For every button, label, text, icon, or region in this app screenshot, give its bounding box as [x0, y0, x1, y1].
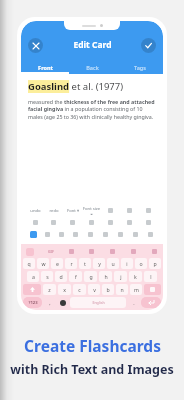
button[interactable]: ,	[44, 297, 55, 308]
button[interactable]: Format h	[98, 230, 113, 239]
button[interactable]: Keyboard tool 1	[68, 248, 75, 255]
button[interactable]: e	[51, 258, 63, 269]
button[interactable]: Backspace	[144, 284, 161, 295]
staticText: Goaslind et al. (1977)	[28, 80, 124, 93]
button[interactable]: k	[129, 271, 142, 282]
button[interactable]: o	[135, 258, 147, 269]
button[interactable]: Format S	[139, 206, 158, 215]
button[interactable]: Save	[141, 38, 156, 53]
button[interactable]: Format Font ▾	[63, 206, 82, 215]
staticText: Tags	[134, 64, 146, 71]
button[interactable]: d	[55, 271, 67, 282]
button[interactable]: j	[114, 271, 127, 282]
staticText: Edit Card	[73, 39, 112, 51]
button[interactable]: Format h	[40, 230, 54, 239]
button[interactable]: t	[79, 258, 91, 269]
button[interactable]: v	[88, 284, 100, 295]
button[interactable]: Format h	[54, 230, 68, 239]
button[interactable]: Format i	[44, 218, 63, 227]
staticText: q	[27, 260, 31, 267]
button[interactable]: Keyboard tool 2	[88, 248, 95, 255]
button[interactable]: a	[27, 271, 39, 282]
staticText: k	[134, 273, 137, 280]
button[interactable]: Front	[21, 60, 69, 74]
button[interactable]: c	[73, 284, 86, 295]
button[interactable]: Format i	[101, 218, 120, 227]
button[interactable]: f	[69, 271, 82, 282]
button[interactable]: Enter	[141, 297, 161, 308]
button[interactable]: g	[84, 271, 97, 282]
staticText: Create Flashcards	[24, 335, 161, 356]
button[interactable]: Format undo	[26, 206, 44, 215]
staticText: ?123	[28, 300, 38, 306]
staticText: t	[84, 260, 86, 267]
staticText: z	[48, 286, 51, 293]
button[interactable]: Back	[69, 60, 116, 74]
button[interactable]: Format S	[120, 206, 139, 215]
button[interactable]: Format i	[120, 218, 139, 227]
button[interactable]: Tags	[116, 60, 163, 74]
button[interactable]: l	[144, 271, 157, 282]
button[interactable]: Emoji keyboard	[26, 248, 34, 256]
staticText: g	[89, 273, 93, 280]
staticText: x	[63, 286, 66, 293]
button[interactable]: Format h	[113, 230, 128, 239]
button[interactable]: Format redo	[44, 206, 63, 215]
button[interactable]: u	[107, 258, 119, 269]
staticText: f	[75, 273, 77, 280]
button[interactable]: Format i	[139, 218, 158, 227]
button[interactable]: Format B	[101, 206, 120, 215]
staticText: l	[150, 273, 152, 280]
button[interactable]: Format i	[63, 218, 82, 227]
button[interactable]: y	[93, 258, 105, 269]
staticText: b	[106, 286, 110, 293]
staticText: Font size ▾	[82, 206, 101, 215]
button[interactable]: Language	[57, 297, 68, 308]
button[interactable]: Keyboard tool 3	[109, 248, 116, 255]
staticText: n	[120, 286, 124, 293]
staticText: undo	[30, 208, 41, 214]
button[interactable]: b	[102, 284, 114, 295]
button[interactable]: Shift	[23, 284, 41, 295]
button[interactable]: x	[58, 284, 71, 295]
staticText: o	[139, 260, 143, 267]
button[interactable]: Space	[70, 297, 126, 308]
button[interactable]: Format h	[83, 230, 98, 239]
staticText: Font ▾	[67, 208, 79, 214]
button[interactable]: m	[130, 284, 142, 295]
staticText: h	[104, 273, 108, 280]
staticText: .	[133, 299, 135, 306]
button[interactable]: s	[41, 271, 53, 282]
button[interactable]: n	[116, 284, 128, 295]
button[interactable]: p	[149, 258, 161, 269]
button[interactable]: ?123	[23, 297, 42, 308]
button[interactable]: GIF	[48, 249, 54, 254]
button[interactable]: Format i	[82, 218, 101, 227]
button[interactable]: Format h	[143, 230, 158, 239]
staticText: m	[134, 286, 139, 293]
button[interactable]: z	[43, 284, 56, 295]
staticText: d	[59, 273, 63, 280]
button[interactable]: Keyboard tool 4	[130, 248, 137, 255]
button[interactable]: Close	[28, 38, 43, 53]
button[interactable]: Format h	[26, 230, 40, 239]
button[interactable]: i	[121, 258, 133, 269]
button[interactable]: w	[37, 258, 49, 269]
staticText: i	[126, 260, 128, 267]
staticText: w	[41, 260, 46, 267]
staticText: e	[56, 260, 59, 267]
button[interactable]: r	[65, 258, 77, 269]
button[interactable]: .	[128, 297, 139, 308]
staticText: p	[153, 260, 157, 267]
button[interactable]: Keyboard tool 5	[151, 248, 158, 255]
staticText: redo	[49, 208, 59, 214]
staticText: Back	[86, 64, 99, 71]
button[interactable]: q	[23, 258, 35, 269]
button[interactable]: Format h	[68, 230, 83, 239]
button[interactable]: Format h	[128, 230, 143, 239]
button[interactable]: Format Font size ▾	[82, 206, 101, 215]
button[interactable]: Format i	[26, 218, 44, 227]
button[interactable]: h	[99, 271, 112, 282]
staticText: with Rich Text and Images	[10, 361, 174, 378]
staticText: English	[92, 300, 105, 305]
